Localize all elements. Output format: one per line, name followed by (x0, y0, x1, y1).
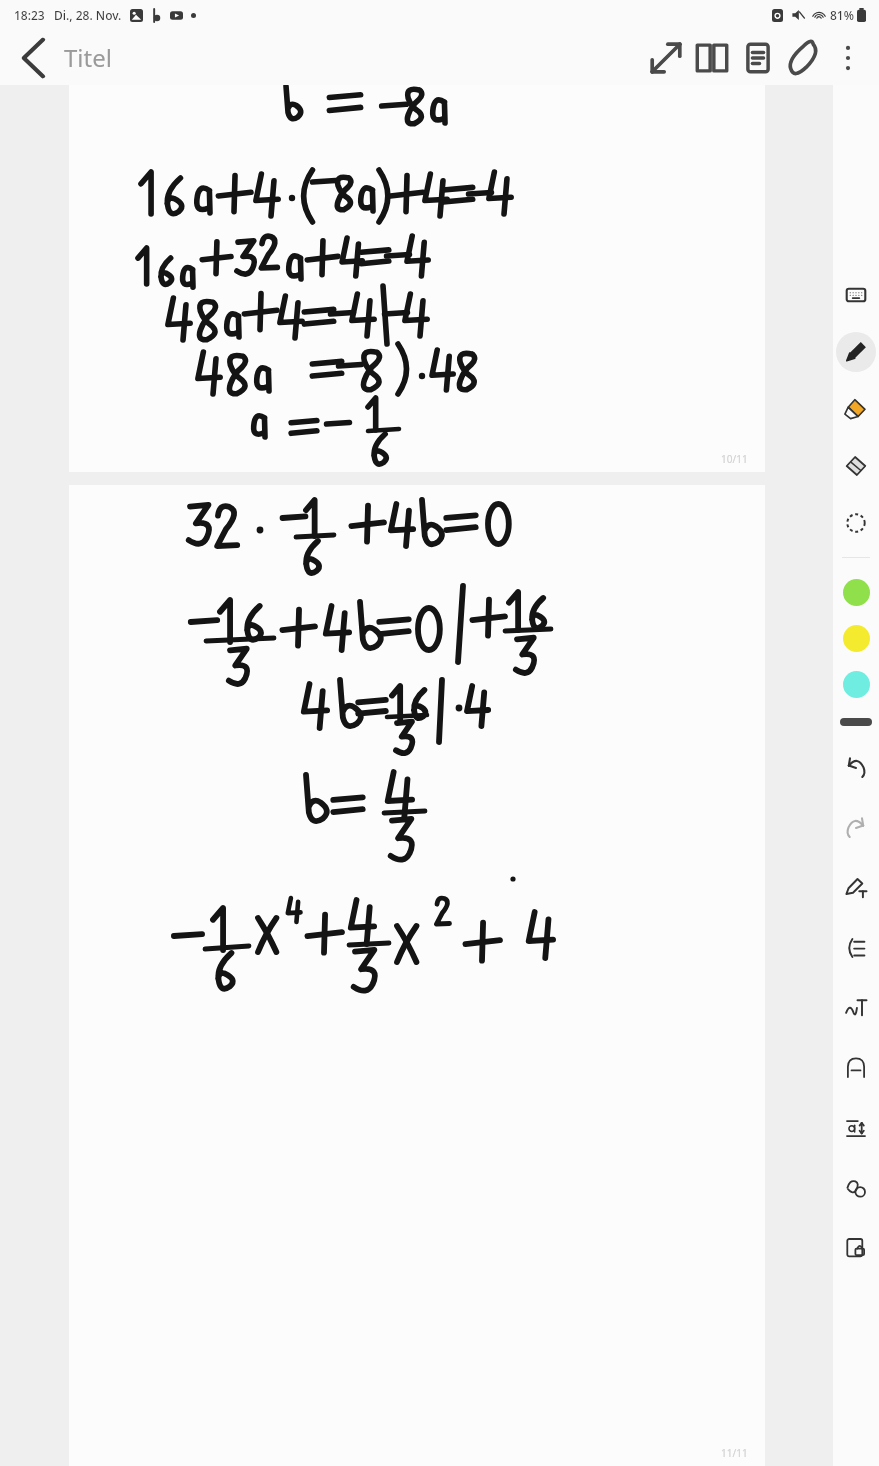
button[interactable]: Yellow colour (836, 618, 876, 658)
button[interactable]: More options (827, 37, 869, 79)
button[interactable]: Green colour (836, 572, 876, 612)
button[interactable]: Cyan colour (836, 664, 876, 704)
button[interactable]: Lasso select (836, 503, 876, 543)
button[interactable]: Text size (836, 1108, 876, 1148)
button[interactable]: Highlighter (836, 389, 876, 429)
button[interactable]: Titel (58, 33, 118, 82)
button[interactable]: Shapes (836, 1168, 876, 1208)
staticText: 18:23 Di., 28. Nov. (14, 7, 122, 23)
staticText: 81% (830, 7, 854, 23)
button[interactable]: Back (10, 35, 56, 81)
staticText: 11/11 (721, 1446, 748, 1460)
button[interactable]: Attach file (781, 35, 827, 81)
button[interactable]: Stroke thickness (840, 718, 872, 726)
button[interactable]: Pen (836, 332, 876, 372)
button[interactable]: Page layout (735, 35, 781, 81)
button[interactable]: Eraser (836, 446, 876, 486)
button[interactable]: Redo (836, 808, 876, 848)
button[interactable]: Straighten text (836, 928, 876, 968)
button[interactable]: Convert handwriting to text (836, 988, 876, 1028)
staticText: 10/11 (721, 452, 748, 466)
button[interactable]: Pen text settings (836, 868, 876, 908)
button[interactable]: Expand (643, 35, 689, 81)
button[interactable]: Auto shape recognition (836, 1048, 876, 1088)
button[interactable]: Lock page (836, 1228, 876, 1268)
button[interactable]: Reading view (689, 35, 735, 81)
button[interactable]: Keyboard (836, 275, 876, 315)
button[interactable]: Undo (836, 748, 876, 788)
staticText: Titel (64, 41, 112, 74)
